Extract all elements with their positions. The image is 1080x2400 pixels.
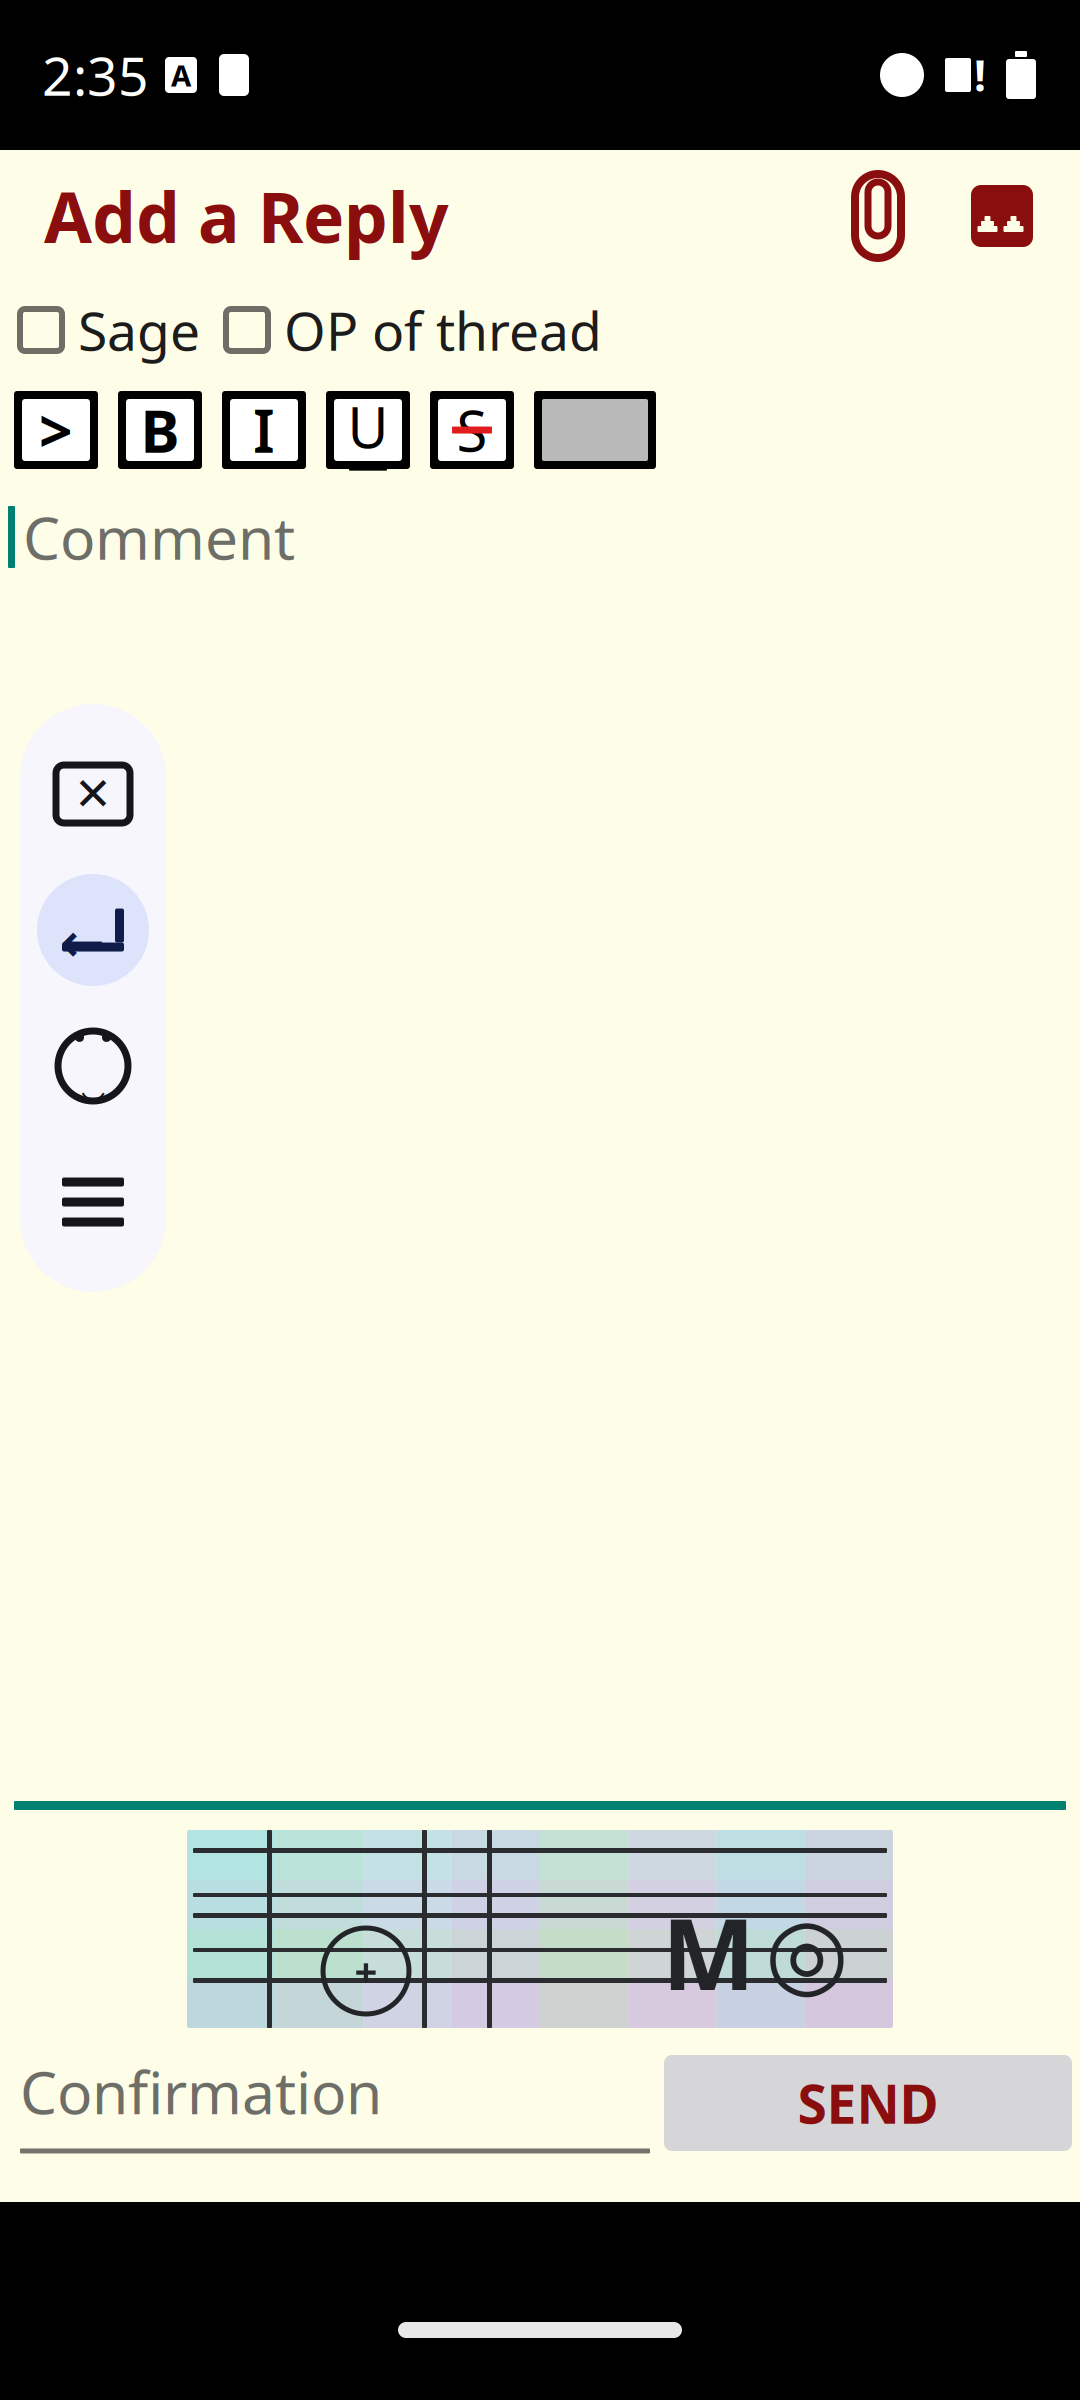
button[interactable]: Keyboard options xyxy=(23,1134,163,1270)
staticText: + xyxy=(354,1944,377,1997)
staticText: S xyxy=(456,393,487,467)
button[interactable]: Underline xyxy=(326,391,410,469)
staticText: ‿ xyxy=(81,1050,105,1103)
button[interactable]: Attach image xyxy=(954,168,1050,264)
staticText: Confirmation xyxy=(20,2052,382,2130)
button[interactable]: Bold xyxy=(118,391,202,469)
staticText: Add a Reply xyxy=(44,170,449,262)
staticText: SEND xyxy=(797,2068,938,2138)
staticText: U xyxy=(347,389,388,464)
staticText: OP of thread xyxy=(284,295,602,365)
button[interactable]: Comment xyxy=(0,482,1080,592)
button[interactable]: SEND xyxy=(664,2055,1072,2151)
staticText: ! xyxy=(974,47,986,103)
button[interactable]: Add a Reply xyxy=(0,152,449,280)
button[interactable]: Sage xyxy=(20,285,200,375)
staticText: I xyxy=(253,391,275,469)
button[interactable]: Spoiler xyxy=(534,391,656,469)
button[interactable]: Emoji xyxy=(23,998,163,1134)
staticText: A xyxy=(171,55,191,94)
staticText: Sage xyxy=(78,295,200,365)
button[interactable]: quote xyxy=(14,391,98,469)
staticText: ✕ xyxy=(74,768,112,820)
staticText: ◎ xyxy=(765,1897,849,2006)
button[interactable]: Italic xyxy=(222,391,306,469)
button[interactable]: Confirmation xyxy=(8,2052,650,2153)
staticText: B xyxy=(140,391,179,469)
staticText: 2:35 xyxy=(42,40,149,110)
staticText: > xyxy=(39,391,73,469)
button[interactable]: Attached image xyxy=(187,1830,893,2028)
staticText: M xyxy=(662,1886,755,2017)
button[interactable]: Attach file xyxy=(830,168,926,264)
button[interactable]: Backspace xyxy=(23,726,163,862)
staticText: ← xyxy=(60,913,105,973)
button[interactable]: Strikethrough xyxy=(430,391,514,469)
button[interactable]: OP of thread xyxy=(226,285,602,375)
button[interactable]: Return xyxy=(23,862,163,998)
staticText: Comment xyxy=(23,498,295,576)
